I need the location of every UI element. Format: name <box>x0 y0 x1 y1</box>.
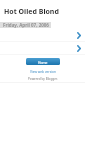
staticText: Friday, April 07, 2006 <box>3 22 49 28</box>
button[interactable]: Open post <box>0 42 85 55</box>
staticText: Hot Oiled Blond <box>4 7 59 17</box>
staticText: Powered by Blogger. <box>28 77 58 81</box>
button[interactable]: Home <box>26 58 60 65</box>
staticText: Home <box>38 60 48 64</box>
button[interactable]: Open post <box>0 29 85 42</box>
button[interactable]: View web version <box>30 70 56 74</box>
